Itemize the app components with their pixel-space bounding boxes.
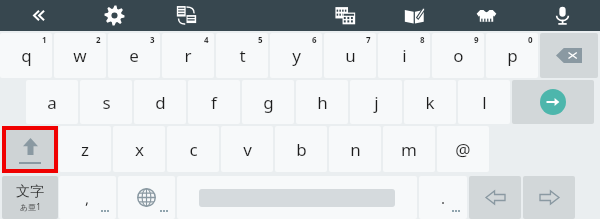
staticText: z bbox=[81, 138, 89, 161]
button[interactable]: , bbox=[59, 176, 116, 219]
button[interactable]: Numeric keypad bbox=[330, 3, 360, 28]
staticText: u bbox=[345, 44, 356, 67]
button[interactable]: Enter bbox=[512, 80, 594, 124]
button[interactable]: Move cursor right bbox=[523, 176, 575, 219]
button[interactable]: Theme bbox=[471, 3, 501, 28]
button[interactable]: s bbox=[80, 80, 132, 124]
staticText: w bbox=[73, 44, 87, 67]
staticText: s bbox=[102, 91, 111, 114]
staticText: 0 bbox=[528, 34, 533, 45]
button[interactable]: r bbox=[162, 33, 214, 78]
button[interactable]: p bbox=[486, 33, 538, 78]
staticText: p bbox=[507, 44, 518, 67]
button[interactable]: m bbox=[383, 126, 435, 172]
button[interactable]: c bbox=[167, 126, 219, 172]
staticText: h bbox=[317, 91, 328, 114]
button[interactable]: v bbox=[221, 126, 273, 172]
button[interactable]: @ bbox=[437, 126, 489, 172]
staticText: d bbox=[155, 91, 166, 114]
button[interactable]: Back bbox=[21, 3, 51, 28]
staticText: b bbox=[296, 138, 307, 161]
staticText: j bbox=[374, 91, 379, 114]
button[interactable]: e bbox=[108, 33, 160, 78]
staticText: g bbox=[263, 91, 274, 114]
staticText: あ亜1 bbox=[20, 201, 41, 212]
button[interactable]: Settings bbox=[99, 3, 129, 28]
staticText: 6 bbox=[312, 34, 317, 45]
button[interactable]: Shift bbox=[0, 126, 59, 174]
staticText: o bbox=[453, 44, 464, 67]
staticText: k bbox=[425, 91, 435, 114]
button[interactable]: Space bbox=[177, 176, 417, 219]
staticText: 9 bbox=[474, 34, 479, 45]
button[interactable]: w bbox=[54, 33, 106, 78]
button[interactable]: h bbox=[296, 80, 348, 124]
button[interactable]: y bbox=[270, 33, 322, 78]
button[interactable]: d bbox=[134, 80, 186, 124]
staticText: l bbox=[482, 91, 487, 114]
staticText: 5 bbox=[258, 34, 263, 45]
button[interactable]: Conversion bbox=[171, 3, 201, 28]
staticText: v bbox=[243, 138, 252, 161]
staticText: 4 bbox=[204, 34, 209, 45]
staticText: y bbox=[292, 44, 301, 67]
staticText: m bbox=[401, 138, 417, 161]
button[interactable]: . bbox=[419, 176, 467, 219]
button[interactable]: l bbox=[458, 80, 510, 124]
button[interactable]: 文字 bbox=[2, 176, 58, 219]
staticText: 3 bbox=[150, 34, 155, 45]
button[interactable]: q bbox=[0, 33, 52, 78]
staticText: f bbox=[211, 91, 217, 114]
staticText: 文字 bbox=[16, 183, 44, 201]
button[interactable]: b bbox=[275, 126, 327, 172]
staticText: e bbox=[129, 44, 139, 67]
button[interactable]: n bbox=[329, 126, 381, 172]
button[interactable]: k bbox=[404, 80, 456, 124]
staticText: . bbox=[441, 188, 446, 208]
button[interactable]: j bbox=[350, 80, 402, 124]
staticText: @ bbox=[455, 138, 471, 161]
button[interactable]: Change keyboard bbox=[118, 176, 175, 219]
staticText: n bbox=[350, 138, 361, 161]
button[interactable]: Voice input bbox=[547, 3, 577, 28]
staticText: t bbox=[239, 44, 246, 67]
staticText: 1 bbox=[42, 34, 47, 45]
button[interactable]: g bbox=[242, 80, 294, 124]
staticText: 8 bbox=[420, 34, 425, 45]
staticText: r bbox=[184, 44, 192, 67]
staticText: i bbox=[402, 44, 407, 67]
staticText: , bbox=[85, 188, 90, 208]
button[interactable]: Move cursor left bbox=[469, 176, 521, 219]
staticText: c bbox=[189, 138, 198, 161]
staticText: x bbox=[135, 138, 144, 161]
button[interactable]: z bbox=[59, 126, 111, 172]
button[interactable]: Backspace bbox=[540, 33, 598, 78]
staticText: q bbox=[21, 44, 32, 67]
staticText: 7 bbox=[366, 34, 371, 45]
button[interactable]: Dictionary bbox=[399, 3, 429, 28]
button[interactable]: t bbox=[216, 33, 268, 78]
staticText: 2 bbox=[96, 34, 101, 45]
button[interactable]: f bbox=[188, 80, 240, 124]
button[interactable]: u bbox=[324, 33, 376, 78]
button[interactable]: o bbox=[432, 33, 484, 78]
staticText: a bbox=[47, 91, 57, 114]
button[interactable]: x bbox=[113, 126, 165, 172]
button[interactable]: i bbox=[378, 33, 430, 78]
button[interactable]: a bbox=[26, 80, 78, 124]
